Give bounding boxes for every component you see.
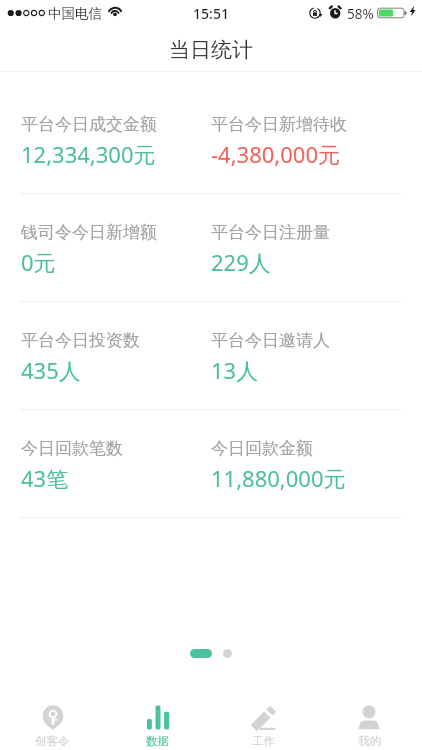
staticText: 0元 (21, 247, 56, 277)
staticText: 创客令 (35, 734, 70, 748)
staticText: 229人 (211, 247, 271, 277)
button[interactable]: 今日回款笔数 (0, 410, 211, 517)
button[interactable]: 平台今日新增待收 (211, 72, 422, 193)
button[interactable]: Profile (316, 694, 422, 750)
staticText: 12,334,300元 (21, 139, 156, 169)
staticText: 平台今日新增待收 (211, 114, 347, 135)
staticText: 15:51 (0, 4, 422, 23)
staticText: 当日统计 (0, 37, 422, 63)
button[interactable]: 平台今日注册量 (211, 194, 422, 301)
button[interactable]: Data (105, 694, 210, 750)
button[interactable]: 平台今日邀请人 (211, 302, 422, 409)
staticText: 工作 (252, 734, 275, 748)
button[interactable]: 钱司令今日新增额 (0, 194, 211, 301)
button[interactable]: 平台今日投资数 (0, 302, 211, 409)
staticText: 43笔 (21, 463, 69, 493)
staticText: 13人 (211, 355, 259, 385)
button[interactable]: 平台今日成交金额 (0, 72, 211, 193)
staticText: 平台今日邀请人 (211, 330, 330, 351)
button[interactable]: Maker orders (0, 694, 105, 750)
button[interactable]: Work (210, 694, 316, 750)
staticText: 中国电信 (48, 5, 102, 22)
staticText: 平台今日注册量 (211, 222, 330, 243)
button[interactable]: 今日回款金额 (211, 410, 422, 517)
staticText: 平台今日成交金额 (21, 114, 157, 135)
staticText: 58% (347, 5, 374, 23)
staticText: 平台今日投资数 (21, 330, 140, 351)
staticText: 11,880,000元 (211, 463, 346, 493)
staticText: 我的 (358, 734, 381, 748)
staticText: 435人 (21, 355, 81, 385)
staticText: 钱司令今日新增额 (21, 222, 157, 243)
staticText: -4,380,000元 (211, 139, 340, 169)
staticText: 今日回款金额 (211, 438, 313, 459)
staticText: 今日回款笔数 (21, 438, 123, 459)
staticText: 数据 (146, 734, 169, 748)
